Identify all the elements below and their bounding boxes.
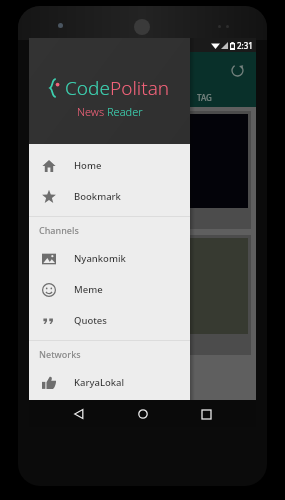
- button[interactable]: [34, 235, 251, 355]
- staticText: News: [77, 104, 107, 119]
- staticText: 2:31: [237, 40, 253, 51]
- button[interactable]: Meme: [29, 274, 190, 305]
- staticText: Meme: [74, 283, 103, 296]
- staticText: Quotes: [74, 314, 107, 327]
- button[interactable]: Refresh: [226, 59, 248, 81]
- button[interactable]: Bookmark: [29, 181, 190, 212]
- button[interactable]: Recents: [193, 401, 219, 427]
- button[interactable]: 7: [34, 111, 251, 229]
- staticText: Reader: [107, 104, 143, 119]
- staticText: Home: [74, 159, 102, 172]
- staticText: Nyankomik: [74, 252, 126, 265]
- staticText: 7: [134, 141, 152, 182]
- staticText: Networks: [39, 348, 81, 360]
- button[interactable]: Nyankomik: [29, 243, 190, 274]
- button[interactable]: Home: [29, 150, 190, 181]
- button[interactable]: Quotes: [29, 305, 190, 336]
- button[interactable]: KaryaLokal: [29, 367, 190, 398]
- staticText: Code: [65, 75, 110, 101]
- staticText: Channels: [39, 224, 79, 236]
- button[interactable]: Home: [130, 401, 156, 427]
- staticText: TAG: [197, 92, 212, 103]
- staticText: Politan: [110, 75, 170, 101]
- staticText: Bookmark: [74, 190, 121, 203]
- button[interactable]: Back: [66, 401, 92, 427]
- staticText: KaryaLokal: [74, 376, 125, 389]
